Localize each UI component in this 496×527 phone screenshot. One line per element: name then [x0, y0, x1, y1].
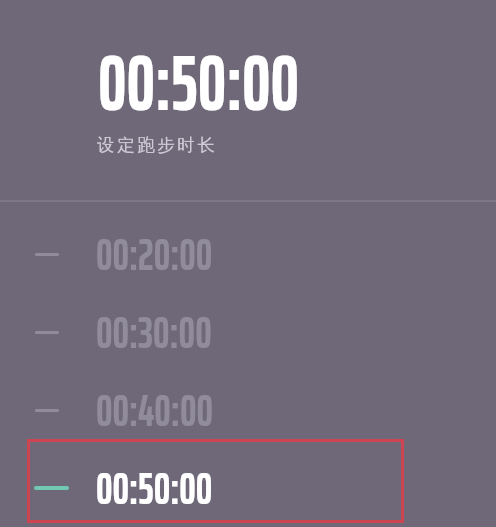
button[interactable]: 00:40:00	[0, 371, 496, 449]
staticText: 00:50:00	[98, 20, 300, 144]
staticText: 00:20:00	[96, 219, 213, 289]
staticText: 设定跑步时长	[97, 134, 218, 156]
staticText: 00:40:00	[96, 375, 213, 445]
button[interactable]: 00:20:00	[0, 215, 496, 293]
staticText: 00:50:00	[96, 453, 213, 523]
button[interactable]: 00:50:00	[0, 449, 496, 527]
staticText: 00:30:00	[96, 297, 212, 367]
button[interactable]: 00:30:00	[0, 293, 496, 371]
